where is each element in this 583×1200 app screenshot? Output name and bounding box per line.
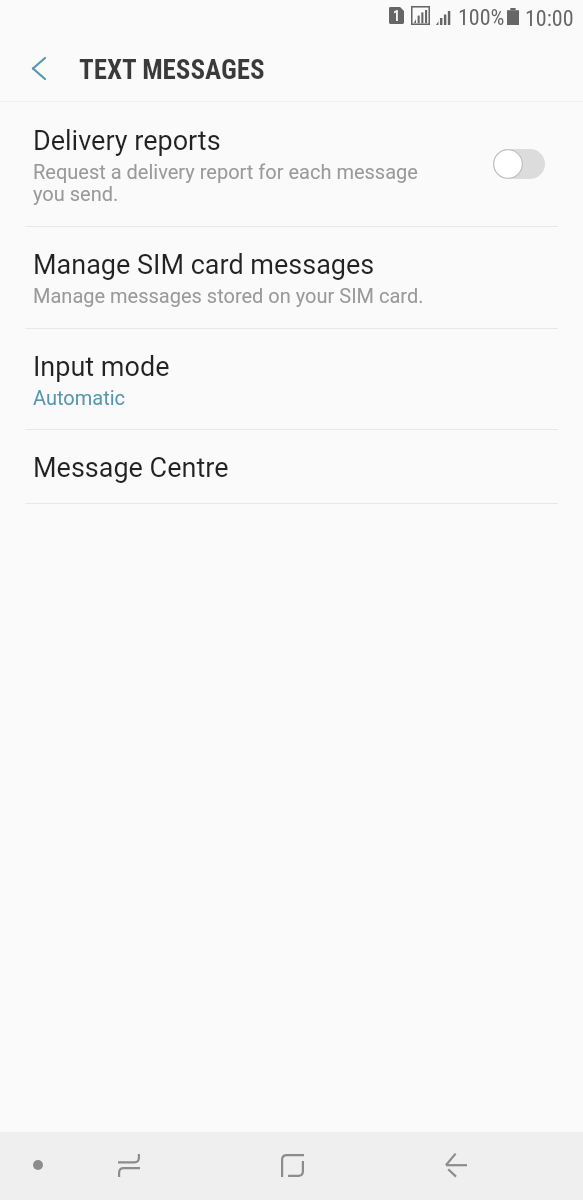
staticText: Message Centre [33, 452, 229, 484]
staticText: Input mode [33, 351, 170, 383]
button[interactable]: Navigate up [14, 44, 63, 92]
button[interactable]: Delivery reports [482, 141, 556, 187]
button[interactable]: Message Centre [0, 430, 583, 503]
staticText: 10:00 [525, 6, 574, 32]
button[interactable]: Manage SIM card messages [0, 227, 583, 328]
button[interactable]: More options [14, 1141, 62, 1189]
button[interactable]: Delivery reports [0, 102, 583, 226]
staticText: TEXT MESSAGES [79, 54, 265, 86]
button[interactable]: Home [268, 1141, 316, 1189]
button[interactable]: Input mode [0, 329, 583, 429]
staticText: 1 [393, 8, 401, 24]
staticText: Manage SIM card messages [33, 249, 375, 281]
staticText: 100% [458, 5, 505, 31]
staticText: Delivery reports [33, 125, 221, 157]
staticText: Request a delivery report for each messa… [33, 160, 418, 206]
staticText: Manage messages stored on your SIM card. [33, 284, 424, 307]
button[interactable]: Recent apps [105, 1141, 153, 1189]
staticText: Automatic [33, 386, 126, 409]
button[interactable]: Back [432, 1141, 480, 1189]
